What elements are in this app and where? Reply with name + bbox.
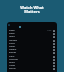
staticText: Mindful — [9, 39, 17, 42]
button[interactable]: Calm — [7, 55, 57, 58]
staticText: Energy — [9, 51, 17, 54]
staticText: Notes — [9, 64, 16, 67]
staticText: Weight — [9, 48, 17, 51]
button[interactable]: Workout — [7, 58, 57, 61]
button[interactable]: Goals — [7, 61, 57, 64]
button[interactable]: Profile — [8, 24, 10, 26]
button[interactable]: Sleep — [7, 29, 57, 32]
staticText: Sleep — [9, 29, 15, 32]
staticText: Water — [9, 45, 16, 48]
staticText: Workout — [9, 58, 18, 61]
staticText: Calm — [9, 55, 15, 58]
button[interactable]: Energy — [7, 51, 57, 54]
staticText: Heart — [9, 35, 15, 38]
button[interactable]: Weight — [7, 48, 57, 51]
staticText: See all — [9, 67, 16, 70]
staticText: Focus — [9, 42, 15, 45]
button[interactable]: Heart — [7, 35, 57, 38]
staticText: View — [47, 29, 52, 32]
button[interactable]: Notes — [7, 64, 57, 67]
staticText: Goals — [9, 61, 15, 64]
button[interactable]: Water — [7, 45, 57, 48]
button[interactable]: Mindful — [7, 39, 57, 42]
button[interactable]: Steps — [7, 32, 57, 35]
button[interactable]: See all — [7, 67, 57, 70]
button[interactable]: Focus — [7, 42, 57, 45]
staticText: Watch What Matters — [0, 5, 64, 14]
staticText: Steps — [9, 32, 15, 35]
